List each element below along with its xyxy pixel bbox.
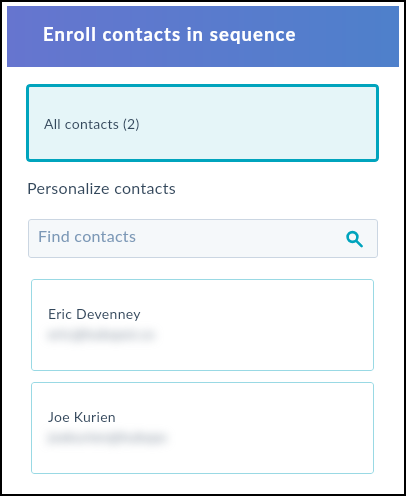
button[interactable]: Joe Kurien [31,382,374,474]
staticText: Joe Kurien [48,408,116,425]
button[interactable]: Eric Devenney [31,279,374,371]
staticText: eric@hubspot.co [48,325,155,342]
button[interactable]: Find contacts [28,219,378,258]
button[interactable]: Enroll contacts in sequence [7,6,399,67]
staticText: joekurien@hubspo [48,428,168,445]
button[interactable]: Search [340,227,364,251]
staticText: Eric Devenney [48,305,141,322]
staticText: Personalize contacts [27,178,176,197]
staticText: Enroll contacts in sequence [43,23,297,45]
staticText: All contacts (2) [44,115,140,132]
staticText: Find contacts [38,226,137,245]
button[interactable]: All contacts (2) [26,84,379,162]
